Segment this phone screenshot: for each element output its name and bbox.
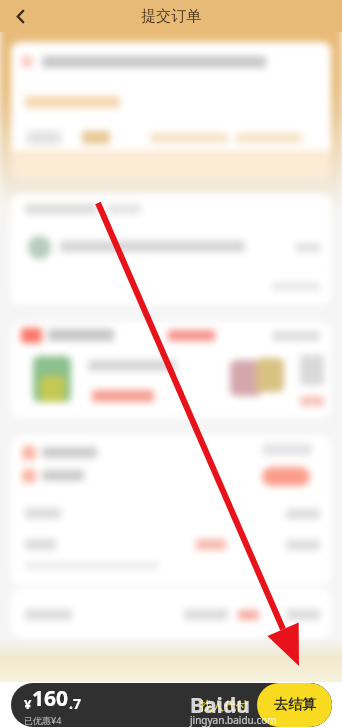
staticText: .7 — [69, 694, 81, 713]
staticText: ¥ — [24, 695, 32, 713]
button[interactable] — [11, 42, 331, 178]
staticText: du — [223, 691, 250, 720]
staticText: 已优惠¥4 — [24, 714, 62, 726]
staticText: jingyan.baidu.com — [190, 713, 277, 727]
button[interactable]: 去结算 — [257, 683, 332, 727]
staticText: Bai — [190, 691, 223, 720]
staticText: 找人代付 — [200, 698, 248, 713]
button[interactable] — [11, 435, 331, 585]
button[interactable]: 找人代付 — [190, 683, 257, 727]
button[interactable] — [11, 589, 331, 638]
staticText: 160 — [32, 684, 69, 713]
button[interactable] — [11, 322, 331, 418]
button[interactable]: Back — [6, 2, 34, 30]
staticText: 去结算 — [274, 696, 316, 714]
button[interactable] — [11, 194, 331, 305]
staticText: 提交订单 — [141, 7, 201, 26]
